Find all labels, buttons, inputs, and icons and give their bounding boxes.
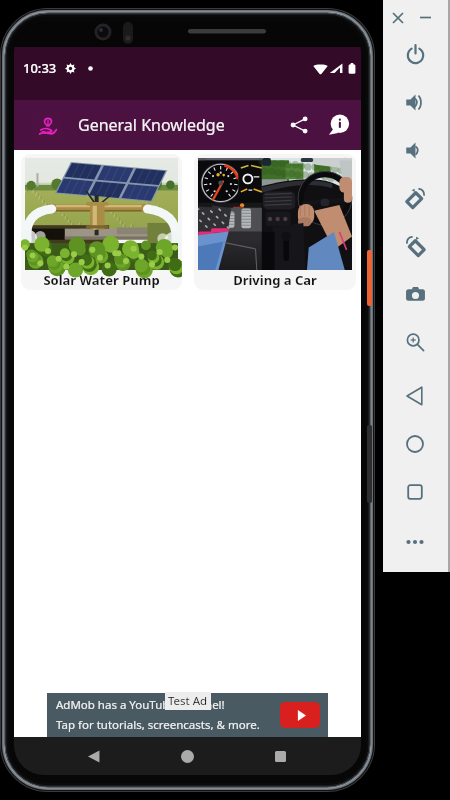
button[interactable]: Close xyxy=(386,6,409,29)
button[interactable]: Home xyxy=(169,738,205,774)
button[interactable]: Minimize xyxy=(414,6,437,29)
button[interactable]: Rotate right xyxy=(394,225,436,267)
button[interactable]: App logo xyxy=(33,111,62,140)
staticText: Solar Water Pump xyxy=(43,271,160,289)
button[interactable]: Zoom xyxy=(394,321,436,363)
button[interactable]: Solar Water Pump xyxy=(21,154,182,290)
button[interactable]: Volume down xyxy=(394,129,436,171)
button[interactable]: More options xyxy=(394,521,436,563)
staticText: 10:33 xyxy=(23,59,57,77)
staticText: Test Ad xyxy=(168,693,208,709)
button[interactable]: Info xyxy=(320,106,358,144)
button[interactable]: Take screenshot xyxy=(394,273,436,315)
button[interactable]: AdMob has a YouTube channel! xyxy=(47,693,328,737)
staticText: Tap for tutorials, screencasts, & more. xyxy=(56,717,260,733)
button[interactable]: Driving a Car xyxy=(194,154,356,290)
staticText: General Knowledge xyxy=(78,114,225,136)
button[interactable]: Power xyxy=(394,33,436,75)
button[interactable]: Rotate left xyxy=(394,177,436,219)
staticText: AdMob has a YouTube channel! xyxy=(56,697,225,713)
button[interactable]: Back xyxy=(76,738,112,774)
button[interactable]: Back xyxy=(394,375,436,417)
button[interactable]: Home xyxy=(394,423,436,465)
button[interactable]: Volume up xyxy=(394,81,436,123)
button[interactable]: Recents xyxy=(262,738,298,774)
button[interactable]: Overview xyxy=(394,471,436,513)
button[interactable]: Share xyxy=(282,108,316,142)
staticText: Driving a Car xyxy=(233,271,317,289)
